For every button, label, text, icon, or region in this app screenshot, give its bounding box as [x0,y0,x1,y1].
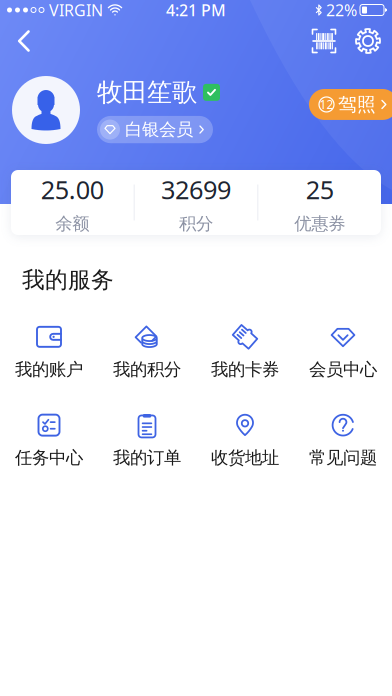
staticText: 任务中心 [15,447,83,468]
button[interactable]: Settings [346,20,390,62]
staticText: 我的服务 [22,266,114,294]
button[interactable]: 我的账户 [0,324,98,380]
button[interactable]: Scan code [302,20,346,62]
staticText: 22% [326,0,357,21]
button[interactable]: 12 [309,89,392,120]
staticText: 优惠券 [294,213,345,234]
button[interactable]: 我的订单 [98,412,196,468]
staticText: 4:21 PM [166,0,226,21]
button[interactable]: 32699 [135,160,257,244]
button[interactable]: 我的积分 [98,324,196,380]
staticText: 驾照 [338,93,376,116]
staticText: 我的账户 [15,359,83,380]
staticText: 25.00 [41,172,104,206]
button[interactable]: 常见问题 [294,412,392,468]
staticText: 余额 [55,213,89,234]
staticText: 我的订单 [113,447,181,468]
button[interactable]: 会员中心 [294,324,392,380]
staticText: 12 [319,96,333,112]
button[interactable]: Back [2,20,46,62]
button[interactable]: 我的卡券 [196,324,294,380]
button[interactable]: 白银会员 [97,116,213,143]
staticText: VIRGIN [49,0,103,21]
staticText: 25 [306,172,334,206]
staticText: 会员中心 [309,359,377,380]
staticText: 我的卡券 [211,359,279,380]
button[interactable]: 25.00 [11,160,134,244]
staticText: 32699 [161,172,231,206]
button[interactable]: 任务中心 [0,412,98,468]
staticText: 常见问题 [309,447,377,468]
button[interactable]: 25 [258,160,381,244]
staticText: 白银会员 [125,119,193,140]
staticText: 我的积分 [113,359,181,380]
staticText: 积分 [179,213,213,234]
button[interactable]: 收货地址 [196,412,294,468]
staticText: 收货地址 [211,447,279,468]
staticText: 牧田笙歌 [97,77,197,108]
